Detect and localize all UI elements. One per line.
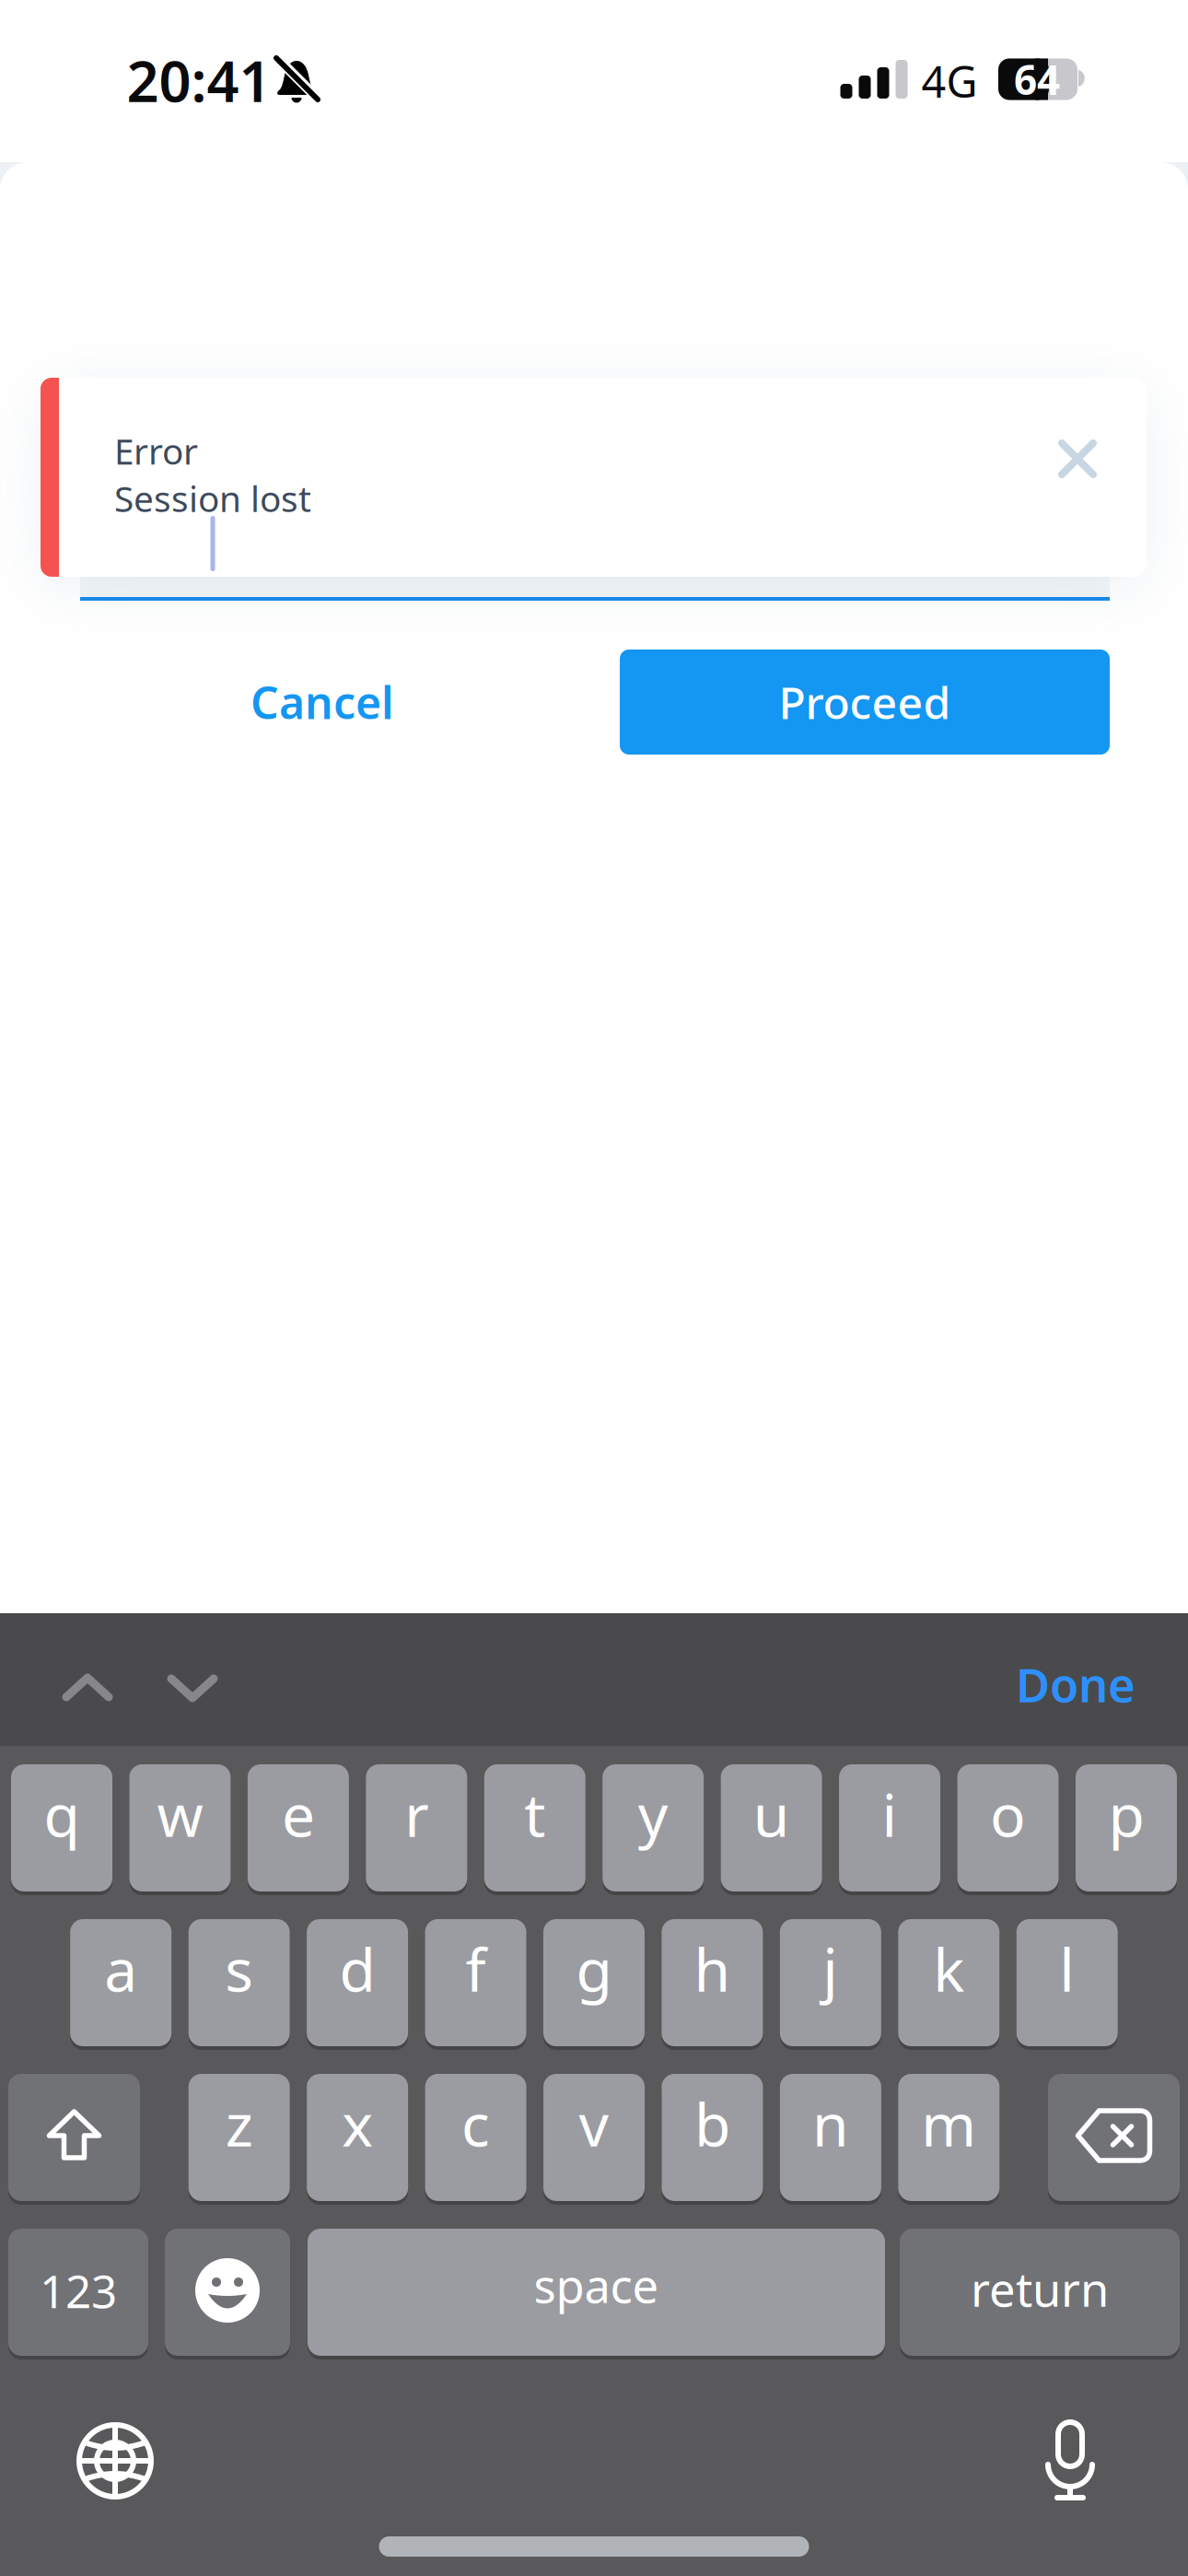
button[interactable]: Previous field: [51, 1661, 124, 1713]
staticText: 20:41: [127, 43, 271, 118]
button[interactable]: n: [780, 2074, 881, 2205]
button[interactable]: Close: [1041, 422, 1114, 496]
staticText: h: [694, 1930, 731, 2008]
staticText: f: [466, 1930, 486, 2008]
button[interactable]: c: [425, 2074, 526, 2205]
staticText: y: [638, 1775, 668, 1853]
button[interactable]: b: [662, 2074, 763, 2205]
button[interactable]: Next field: [156, 1663, 229, 1715]
button[interactable]: q: [11, 1764, 112, 1895]
staticText: i: [882, 1775, 898, 1853]
button[interactable]: Text input: [80, 516, 1110, 601]
staticText: a: [104, 1930, 137, 2008]
button[interactable]: u: [721, 1764, 822, 1895]
staticText: w: [157, 1775, 203, 1853]
staticText: l: [1059, 1930, 1075, 2008]
staticText: t: [524, 1775, 545, 1853]
button[interactable]: Done: [1016, 1653, 1136, 1715]
button[interactable]: k: [898, 1919, 999, 2050]
staticText: p: [1108, 1775, 1144, 1853]
staticText: 4G: [921, 53, 978, 110]
button[interactable]: 123: [8, 2229, 148, 2359]
button[interactable]: d: [307, 1919, 408, 2050]
button[interactable]: v: [543, 2074, 645, 2205]
button[interactable]: o: [957, 1764, 1059, 1895]
button[interactable]: Proceed: [620, 650, 1110, 755]
button[interactable]: Switch keyboard: [76, 2422, 154, 2500]
button[interactable]: i: [839, 1764, 940, 1895]
button[interactable]: x: [307, 2074, 408, 2205]
staticText: s: [225, 1930, 253, 2008]
button[interactable]: p: [1076, 1764, 1177, 1895]
staticText: Done: [1016, 1653, 1136, 1715]
staticText: space: [534, 2254, 659, 2316]
button[interactable]: Emoji: [165, 2229, 290, 2359]
button[interactable]: Dictate: [1044, 2420, 1096, 2503]
staticText: k: [933, 1930, 964, 2008]
button[interactable]: return: [900, 2229, 1180, 2359]
button[interactable]: space: [308, 2229, 885, 2359]
staticText: return: [971, 2258, 1109, 2320]
button[interactable]: w: [129, 1764, 231, 1895]
button[interactable]: e: [248, 1764, 349, 1895]
button[interactable]: l: [1016, 1919, 1118, 2050]
staticText: z: [225, 2084, 253, 2163]
staticText: u: [753, 1775, 790, 1853]
button[interactable]: t: [484, 1764, 586, 1895]
button[interactable]: h: [662, 1919, 763, 2050]
button[interactable]: r: [366, 1764, 467, 1895]
button[interactable]: y: [602, 1764, 704, 1895]
button[interactable]: Cancel: [157, 650, 488, 755]
staticText: n: [812, 2084, 849, 2163]
button[interactable]: f: [425, 1919, 526, 2050]
button[interactable]: g: [543, 1919, 645, 2050]
staticText: 123: [40, 2260, 117, 2321]
button[interactable]: j: [780, 1919, 881, 2050]
staticText: Error: [114, 427, 198, 474]
button[interactable]: Shift: [8, 2074, 140, 2205]
staticText: c: [461, 2084, 490, 2163]
staticText: Session lost: [114, 474, 311, 522]
staticText: e: [282, 1775, 315, 1853]
staticText: r: [405, 1775, 429, 1853]
staticText: v: [579, 2084, 609, 2163]
staticText: o: [990, 1775, 1026, 1853]
staticText: Proceed: [779, 673, 951, 731]
button[interactable]: z: [189, 2074, 290, 2205]
button[interactable]: s: [188, 1919, 290, 2050]
button[interactable]: a: [70, 1919, 171, 2050]
staticText: g: [576, 1930, 612, 2008]
staticText: x: [342, 2084, 373, 2163]
staticText: Cancel: [250, 673, 394, 731]
staticText: 64: [1014, 52, 1060, 106]
staticText: j: [823, 1930, 838, 2008]
button[interactable]: m: [898, 2074, 999, 2205]
staticText: b: [694, 2084, 730, 2163]
button[interactable]: Delete: [1048, 2074, 1180, 2205]
staticText: d: [339, 1930, 375, 2008]
staticText: m: [921, 2084, 976, 2163]
staticText: q: [44, 1775, 80, 1853]
